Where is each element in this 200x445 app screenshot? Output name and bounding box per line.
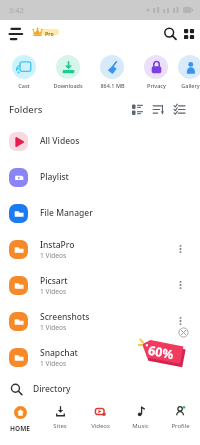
staticText: 1 Videos bbox=[40, 287, 67, 296]
button[interactable]: Pro bbox=[32, 20, 60, 48]
button[interactable]: Menu bbox=[6, 24, 26, 44]
staticText: Sites bbox=[53, 422, 67, 430]
button[interactable]: Playlist bbox=[0, 159, 200, 195]
staticText: 864.1 MB bbox=[100, 82, 125, 89]
button[interactable]: Gallery bbox=[178, 48, 200, 96]
staticText: Pro bbox=[45, 30, 54, 37]
button[interactable]: Privacy bbox=[134, 48, 178, 96]
staticText: Videos bbox=[91, 422, 110, 430]
staticText: Gallery bbox=[181, 82, 200, 89]
staticText: All Videos bbox=[40, 135, 80, 147]
button[interactable]: More options bbox=[173, 350, 187, 364]
button[interactable]: Directory bbox=[0, 375, 200, 403]
staticText: 1 Videos bbox=[40, 251, 67, 260]
button[interactable]: More options bbox=[173, 314, 187, 328]
staticText: Snapchat bbox=[40, 347, 78, 359]
button[interactable]: View mode 1 bbox=[132, 104, 143, 115]
staticText: Directory bbox=[33, 383, 71, 395]
button[interactable]: More options bbox=[173, 242, 187, 256]
button[interactable]: File Manager bbox=[0, 195, 200, 231]
button[interactable]: Cast bbox=[2, 48, 46, 96]
staticText: Profile bbox=[171, 422, 190, 430]
button[interactable]: Grid view bbox=[183, 28, 195, 40]
button[interactable]: Profile bbox=[160, 400, 200, 445]
button[interactable]: View mode 3 bbox=[174, 104, 185, 115]
staticText: Downloads bbox=[53, 82, 83, 89]
button[interactable]: InstaPro bbox=[0, 231, 200, 267]
button[interactable]: Screenshots bbox=[0, 303, 200, 339]
staticText: Picsart bbox=[40, 275, 68, 287]
button[interactable]: Music bbox=[120, 400, 160, 445]
staticText: 3:42 bbox=[9, 5, 24, 15]
button[interactable]: All Videos bbox=[0, 123, 200, 159]
staticText: 60% bbox=[147, 342, 175, 363]
staticText: Privacy bbox=[147, 82, 166, 89]
staticText: Music bbox=[132, 422, 149, 430]
button[interactable]: View mode 2 bbox=[153, 104, 164, 115]
staticText: Folders bbox=[9, 103, 43, 116]
button[interactable]: More options bbox=[173, 278, 187, 292]
button[interactable]: 864.1 MB bbox=[90, 48, 134, 96]
staticText: InstaPro bbox=[40, 239, 75, 251]
button[interactable]: Downloads bbox=[46, 48, 90, 96]
staticText: Playlist bbox=[40, 171, 69, 183]
button[interactable]: Sites bbox=[40, 400, 80, 445]
button[interactable]: Videos bbox=[80, 400, 120, 445]
staticText: File Manager bbox=[40, 207, 93, 219]
button[interactable]: Snapchat bbox=[0, 339, 200, 375]
staticText: Cast bbox=[18, 82, 30, 89]
staticText: Screenshots bbox=[40, 311, 90, 323]
button[interactable]: Close ad bbox=[178, 327, 189, 338]
button[interactable]: HOME bbox=[0, 400, 40, 445]
staticText: 1 Videos bbox=[40, 323, 67, 332]
button[interactable]: Search bbox=[161, 24, 179, 42]
button[interactable]: Picsart bbox=[0, 267, 200, 303]
staticText: HOME bbox=[10, 424, 30, 433]
staticText: 1 Videos bbox=[40, 359, 67, 368]
